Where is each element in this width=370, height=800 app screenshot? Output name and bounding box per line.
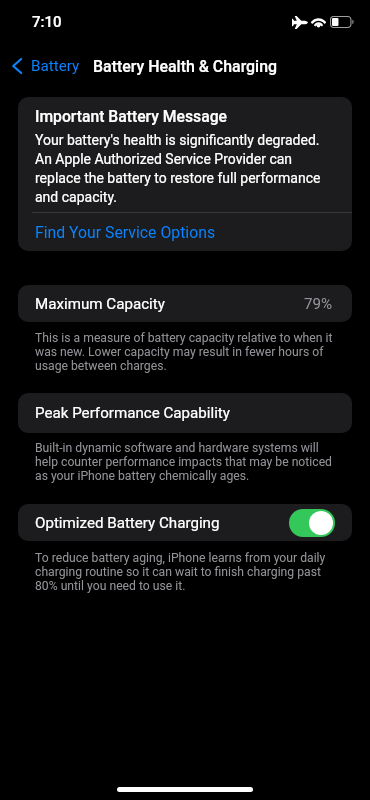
staticText: Maximum Capacity <box>35 295 165 313</box>
staticText: This is a measure of battery capacity re… <box>35 331 337 373</box>
staticText: Built-in dynamic software and hardware s… <box>35 441 337 483</box>
staticText: Optimized Battery Charging <box>35 514 220 532</box>
staticText: Your battery's health is significantly d… <box>35 130 327 206</box>
staticText: Find Your Service Options <box>35 223 216 242</box>
staticText: 7:10 <box>32 13 62 31</box>
staticText: Important Battery Message <box>35 107 227 125</box>
button[interactable]: Optimized Battery Charging <box>18 504 352 541</box>
button[interactable]: Peak Performance Capability <box>18 393 352 433</box>
other: Wi-Fi <box>311 16 326 28</box>
staticText: To reduce battery aging, iPhone learns f… <box>35 551 337 593</box>
staticText: Peak Performance Capability <box>35 404 230 422</box>
other: Battery 33 percent <box>330 16 354 28</box>
staticText: Battery Health & Charging <box>93 57 278 76</box>
other: Airplane mode <box>292 16 308 29</box>
button[interactable]: Find Your Service Options <box>18 213 352 251</box>
staticText: 79% <box>304 295 333 313</box>
button[interactable]: Maximum Capacity <box>18 285 352 322</box>
staticText: Battery <box>31 57 80 75</box>
button[interactable]: Back to Battery <box>6 48 88 84</box>
button[interactable]: Optimized Battery Charging, on <box>289 509 335 537</box>
